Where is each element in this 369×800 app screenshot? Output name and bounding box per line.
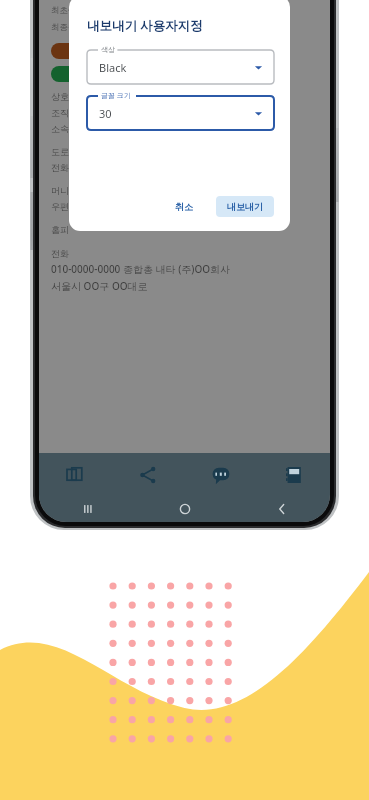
button[interactable]: sample@naver.com	[51, 43, 155, 59]
button[interactable]: Back	[233, 496, 330, 522]
staticText: Black	[99, 60, 127, 75]
staticText: 상호	[51, 91, 69, 102]
staticText: 홈피	[51, 224, 69, 235]
staticText: 내보내기 사용자지정	[87, 17, 203, 34]
staticText: 010-0000-0000 종합총 내타 (주)OO회사	[51, 262, 231, 276]
staticText: 취소	[175, 201, 193, 212]
button[interactable]: 글꼴 크기	[87, 96, 274, 130]
staticText: 02-1234-5678	[71, 69, 116, 79]
staticText: 최초생성일: 2022.06.12 19:24	[51, 4, 166, 16]
button[interactable]: 02-1234-5678	[51, 66, 135, 82]
button[interactable]: Share	[111, 453, 184, 496]
staticText: 도로	[51, 146, 69, 157]
button[interactable]: 내보내기	[216, 196, 274, 217]
staticText: sample@naver.com	[70, 46, 136, 56]
staticText: 최종수정일: 2022.06.12 19:24	[51, 21, 166, 33]
button[interactable]: Copy	[39, 453, 111, 496]
staticText: 소속	[51, 123, 69, 134]
button[interactable]: Recents	[39, 496, 136, 522]
staticText: 내보내기	[227, 201, 263, 212]
staticText: 색상	[101, 45, 115, 54]
button[interactable]: 취소	[166, 196, 202, 217]
button[interactable]: Address book	[257, 453, 330, 496]
button[interactable]: 010-0000-0000	[163, 43, 251, 59]
button[interactable]: Korean	[184, 453, 257, 496]
staticText: 글꼴 크기	[101, 91, 131, 101]
button[interactable]: Home	[136, 496, 233, 522]
staticText: 전화	[51, 248, 69, 259]
staticText: 전화	[51, 162, 69, 173]
staticText: 머니	[51, 185, 69, 196]
staticText: 30	[99, 106, 112, 121]
staticText: 우편	[51, 201, 69, 212]
staticText: 010-0000-0000	[183, 46, 232, 56]
staticText: 서울시 OO구 OO대로	[51, 279, 148, 293]
staticText: 조직	[51, 107, 69, 118]
button[interactable]: 색상	[87, 50, 274, 84]
